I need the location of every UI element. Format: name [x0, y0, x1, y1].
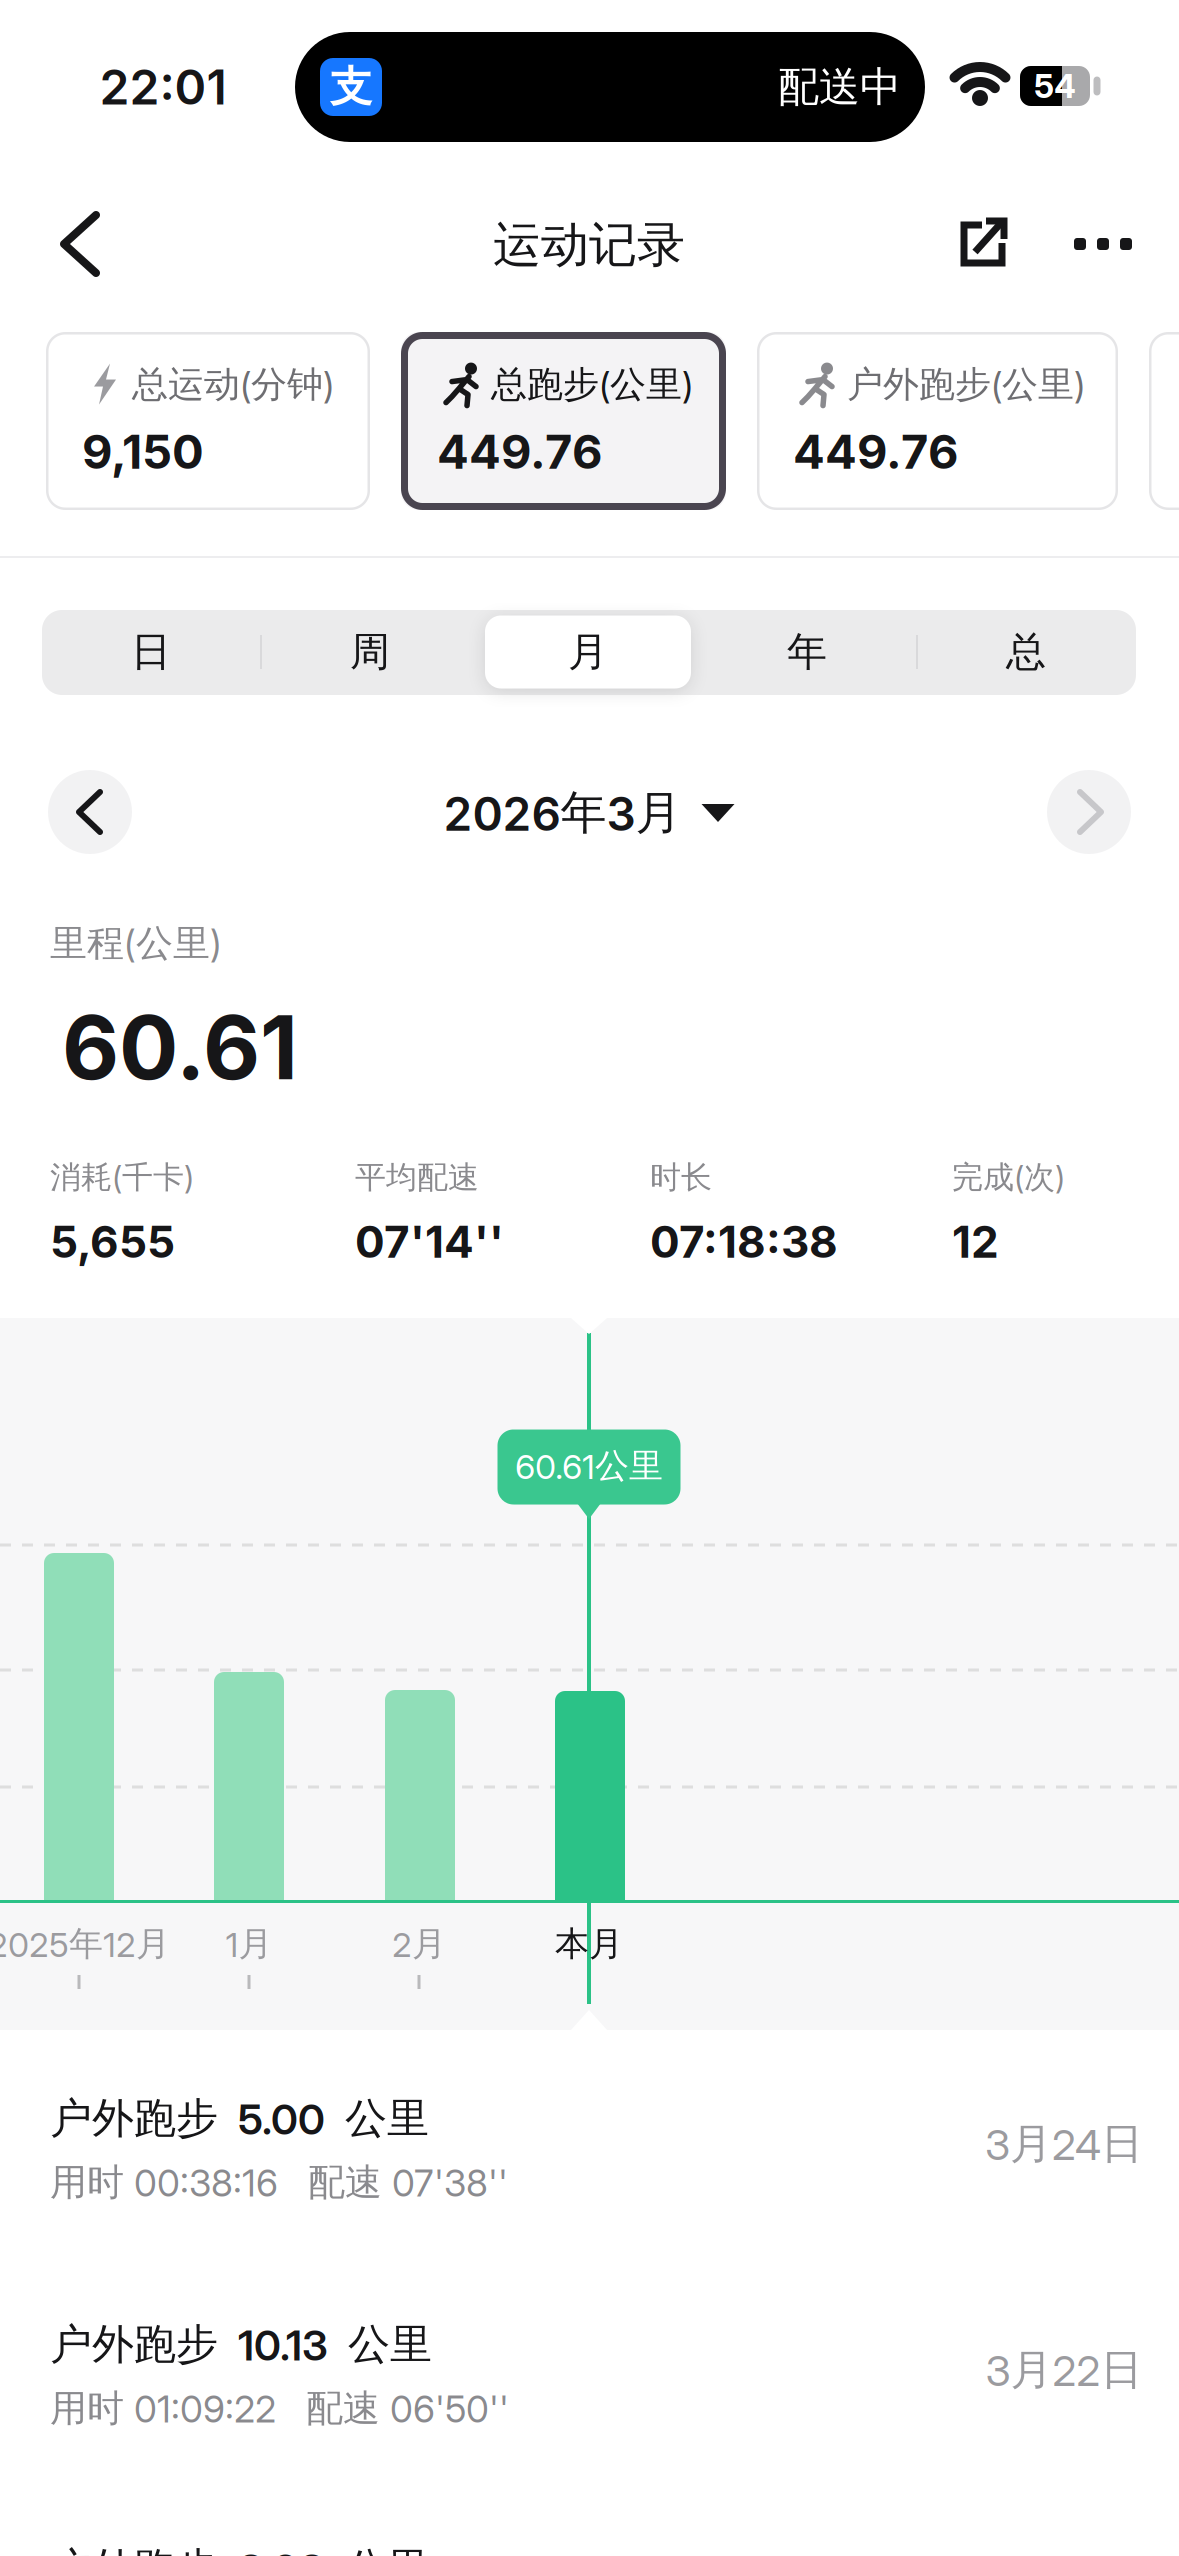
staticText: 9,150 — [82, 423, 204, 480]
staticText: 5,655 — [50, 1215, 175, 1268]
staticText: 户外跑步 5.00 公里 — [50, 2092, 429, 2145]
staticText: 支 — [330, 60, 372, 113]
staticText: 用时 00:38:16 配速 07'38'' — [50, 2159, 508, 2206]
staticText: 3月22日 — [985, 2343, 1142, 2396]
staticText: 户外跑步(公里) — [847, 362, 1085, 407]
staticText: 年 — [787, 627, 827, 677]
staticText: 2026年3月 — [443, 784, 681, 842]
staticText: 户外跑步 3.03 公里 — [50, 2542, 429, 2556]
staticText: 时长 — [650, 1158, 712, 1197]
staticText: 里程(公里) — [50, 920, 222, 967]
staticText: 总 — [1006, 627, 1046, 677]
staticText: 周 — [350, 627, 390, 677]
staticText: 消耗(千卡) — [50, 1158, 194, 1197]
staticText: 总运动(分钟) — [132, 362, 334, 407]
staticText: 配送中 — [778, 61, 901, 113]
staticText: 3月24日 — [985, 2117, 1143, 2170]
staticText: 60.61公里 — [515, 1445, 663, 1487]
staticText: 运动记录 — [493, 215, 685, 275]
staticText: 用时 01:09:22 配速 06'50'' — [50, 2385, 509, 2432]
staticText: 07:18:38 — [650, 1215, 838, 1268]
staticText: 12 — [952, 1215, 999, 1268]
staticText: 449.76 — [793, 423, 959, 480]
staticText: 449.76 — [437, 423, 603, 480]
staticText: 本月 — [555, 1923, 623, 1965]
staticText: 60.61 — [62, 994, 298, 1100]
staticText: 54 — [1034, 66, 1076, 106]
staticText: 07'14'' — [355, 1215, 504, 1268]
staticText: 月 — [568, 627, 608, 677]
staticText: 22:01 — [99, 58, 226, 116]
staticText: 总跑步(公里) — [491, 362, 693, 407]
staticText: 户外跑步 10.13 公里 — [50, 2318, 432, 2371]
staticText: 平均配速 — [355, 1158, 479, 1197]
staticText: 完成(次) — [952, 1158, 1065, 1197]
staticText: 日 — [131, 627, 171, 677]
staticText: 1月 — [225, 1923, 272, 1965]
staticText: 2025年12月 — [0, 1923, 170, 1965]
staticText: 2月 — [392, 1923, 446, 1965]
